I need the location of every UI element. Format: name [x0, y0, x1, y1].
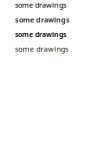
staticText: some drawings [15, 15, 70, 25]
staticText: some drawings [15, 0, 66, 10]
staticText: some drawings [15, 44, 68, 54]
staticText: some drawings [15, 30, 66, 39]
